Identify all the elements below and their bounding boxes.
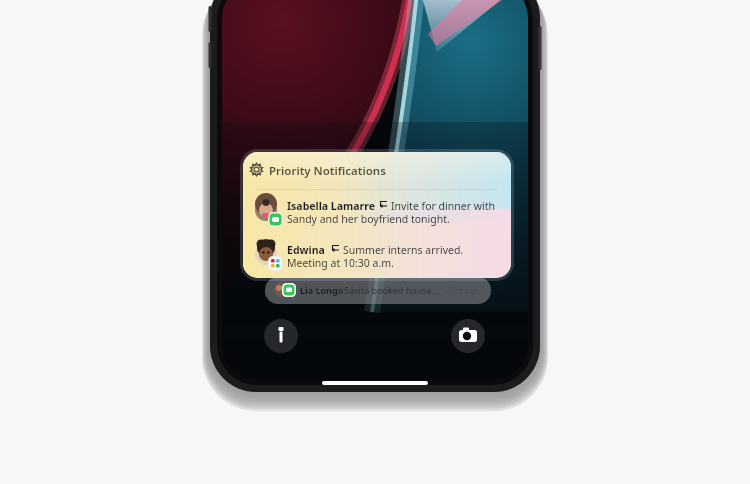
staticText: Isabella Lamarre	[287, 199, 375, 213]
button[interactable]	[243, 190, 511, 235]
button[interactable]: Camera	[451, 319, 485, 353]
staticText: Savita booked house…	[344, 284, 439, 296]
button[interactable]: Flashlight	[264, 319, 298, 353]
staticText: Lia Longo	[300, 284, 344, 296]
button[interactable]	[243, 152, 511, 186]
staticText: Priority Notifications	[269, 163, 386, 179]
staticText: Invite for dinner with	[391, 199, 495, 213]
button[interactable]	[265, 277, 491, 304]
staticText: Summer interns arrived.	[343, 243, 464, 257]
staticText: Sandy and her boyfriend tonight.	[287, 212, 450, 226]
staticText: Meeting at 10:30 a.m.	[287, 256, 394, 270]
staticText: 41m ago	[446, 285, 479, 296]
staticText: Edwina	[287, 243, 325, 257]
button[interactable]	[243, 236, 511, 278]
